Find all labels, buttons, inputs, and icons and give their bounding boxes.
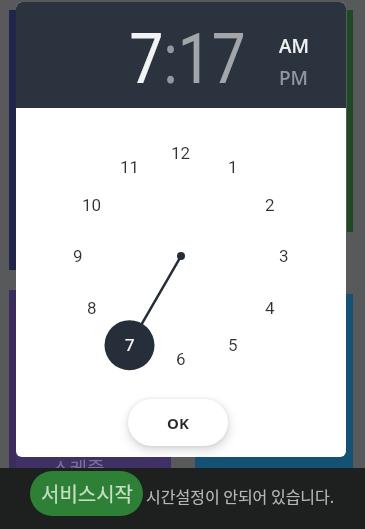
staticText: 7 [125, 335, 135, 355]
staticText: 1 [228, 157, 238, 177]
staticText: 2 [265, 195, 275, 215]
button[interactable]: OK [128, 399, 228, 446]
staticText: 8 [87, 298, 97, 318]
staticText: 11 [120, 157, 140, 177]
staticText: 4 [265, 298, 275, 318]
button[interactable]: AM [279, 33, 309, 59]
staticText: 12 [171, 143, 191, 163]
staticText: PM [279, 65, 309, 91]
staticText: 7:17 [129, 18, 245, 100]
staticText: OK [167, 413, 190, 433]
staticText: 10 [82, 195, 102, 215]
staticText: 5 [228, 335, 238, 355]
staticText: 3 [279, 246, 289, 266]
button[interactable]: PM [279, 65, 309, 91]
staticText: 9 [73, 246, 83, 266]
staticText: 시간설정이 안되어 있습니다. [146, 484, 335, 507]
staticText: 서비스시작 [41, 479, 133, 508]
button[interactable]: 서비스시작 [30, 471, 143, 516]
staticText: 스케줄 [52, 454, 105, 482]
staticText: 6 [176, 349, 186, 369]
staticText: AM [279, 33, 309, 59]
